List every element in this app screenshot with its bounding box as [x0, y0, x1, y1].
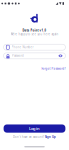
staticText: Don't have an account?: [13, 135, 44, 139]
button[interactable]: Phone Number: [4, 44, 65, 50]
staticText: Phone Number: [12, 45, 34, 49]
staticText: Sign Up: [45, 135, 56, 139]
button[interactable]: Password: [4, 53, 65, 59]
staticText: Data Point v1.0: [22, 29, 46, 32]
staticText: Password: [12, 54, 24, 58]
staticText: Login: [29, 126, 40, 131]
button[interactable]: Login: [4, 124, 65, 133]
staticText: Forgot Password?: [41, 67, 65, 70]
button[interactable]: Sign Up: [45, 135, 56, 139]
button[interactable]: Forgot Password?: [41, 67, 65, 70]
staticText: We're happy to see you here again: [10, 32, 58, 36]
